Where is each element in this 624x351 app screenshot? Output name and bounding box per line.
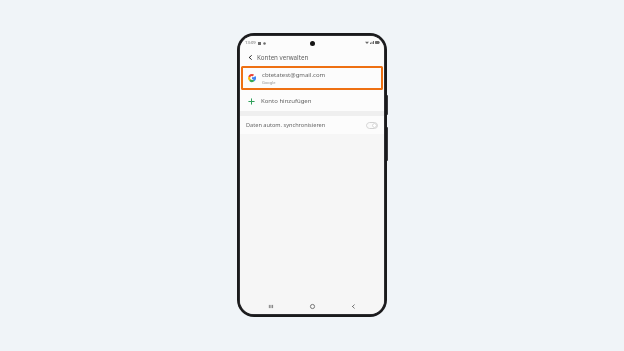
staticText: cbtetatest@gmail.com [262,71,326,79]
button[interactable]: Back [343,299,363,313]
button[interactable]: Home [302,299,322,313]
button[interactable]: cbtetatest@gmail.com [241,66,383,90]
staticText: 13:09 [245,40,256,46]
button[interactable]: Back [244,51,256,63]
button[interactable]: Recents [261,299,281,313]
staticText: Google [262,80,276,85]
staticText: Konten verwalten [257,53,309,61]
button[interactable]: Konto hinzufügen [240,91,384,111]
button[interactable]: Daten autom. synchronisieren [240,116,384,134]
staticText: Konto hinzufügen [261,97,312,105]
staticText: Daten autom. synchronisieren [246,121,326,129]
